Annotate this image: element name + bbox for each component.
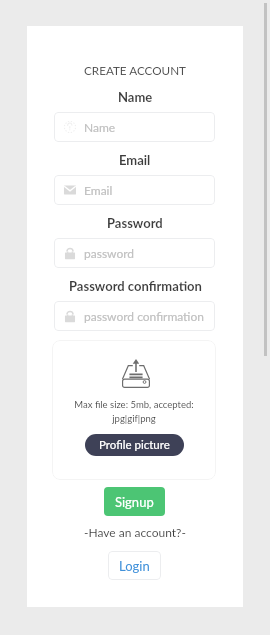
staticText: Password — [107, 215, 163, 231]
button[interactable]: Profile picture — [85, 434, 184, 456]
staticText: Name — [84, 120, 116, 134]
button[interactable]: Name — [54, 112, 215, 142]
staticText: Max file size: 5mb, accepted: jpg|gif|pn… — [74, 399, 194, 424]
staticText: password — [84, 246, 135, 260]
staticText: Login — [119, 558, 150, 574]
staticText: password confirmation — [84, 309, 205, 323]
staticText: Name — [118, 89, 153, 105]
staticText: Password confirmation — [69, 278, 202, 294]
staticText: -Have an account?- — [84, 525, 186, 539]
button[interactable]: Login — [108, 551, 161, 580]
staticText: Email — [84, 183, 113, 197]
button[interactable]: password — [54, 238, 215, 268]
button[interactable]: Email — [54, 175, 215, 205]
button[interactable]: Signup — [104, 487, 165, 516]
staticText: Email — [119, 152, 151, 168]
button[interactable]: password confirmation — [54, 301, 215, 331]
staticText: CREATE ACCOUNT — [84, 63, 186, 77]
staticText: Profile picture — [99, 438, 170, 452]
staticText: Signup — [115, 494, 154, 510]
